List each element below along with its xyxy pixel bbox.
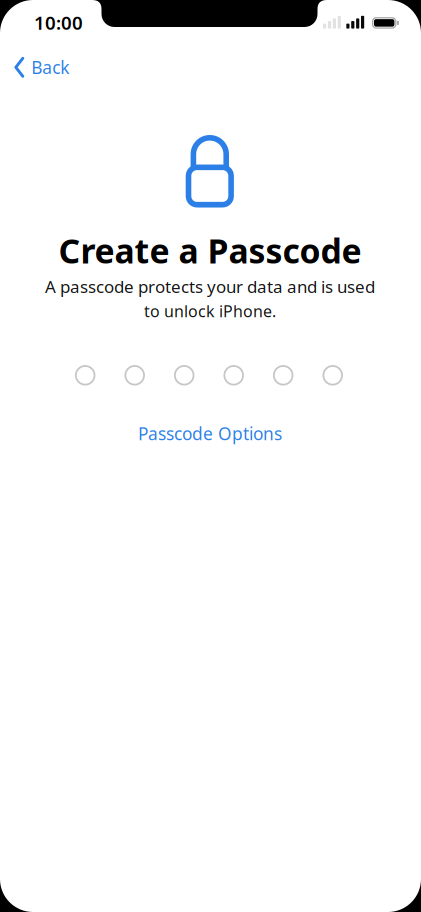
staticText: A passcode protects your data and is use… (45, 275, 375, 298)
staticText: Back (31, 56, 69, 79)
button[interactable]: Back (14, 56, 69, 79)
staticText: 10:00 (34, 10, 83, 35)
staticText: Create a Passcode (58, 228, 361, 273)
staticText: Passcode Options (138, 422, 282, 445)
staticText: to unlock iPhone. (144, 300, 276, 322)
button[interactable]: Passcode Options (138, 422, 282, 445)
